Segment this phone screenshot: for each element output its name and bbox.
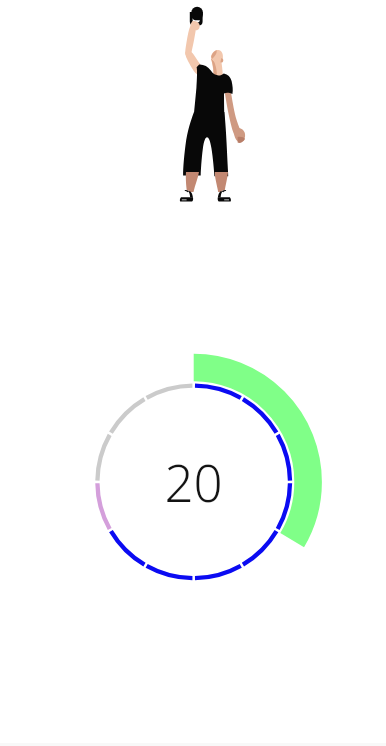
button[interactable]: Kettlebell press exercise animation [170, 0, 250, 206]
staticText: 20 [150, 447, 237, 509]
button[interactable]: Workout progress, 20 reps remaining [79, 367, 308, 596]
